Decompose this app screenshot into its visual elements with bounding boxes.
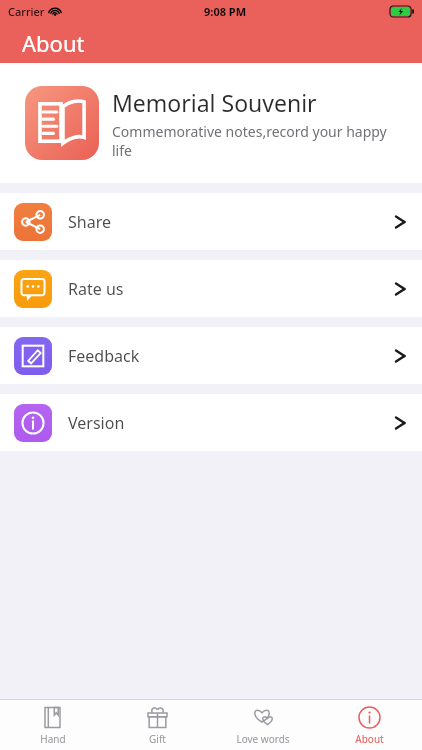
button[interactable]: Love words [210, 700, 316, 750]
staticText: About [355, 732, 384, 746]
staticText: Rate us [68, 278, 124, 300]
button[interactable]: Gift [105, 700, 210, 750]
button[interactable]: Feedback [0, 327, 422, 384]
staticText: Carrier [8, 4, 45, 19]
button[interactable]: Share [0, 193, 422, 250]
staticText: Feedback [68, 345, 140, 367]
staticText: Gift [149, 732, 166, 746]
staticText: Hand [40, 732, 66, 746]
staticText: Commemorative notes,record your happy li… [112, 122, 410, 160]
staticText: Love words [236, 732, 290, 746]
button[interactable]: Version [0, 394, 422, 451]
button[interactable]: Rate us [0, 260, 422, 317]
button[interactable]: About [316, 700, 422, 750]
staticText: About [22, 28, 85, 58]
button[interactable]: Hand [0, 700, 105, 750]
staticText: Share [68, 211, 111, 233]
staticText: Memorial Souvenir [112, 87, 317, 118]
staticText: 9:08 PM [204, 4, 247, 19]
staticText: Version [68, 412, 125, 434]
